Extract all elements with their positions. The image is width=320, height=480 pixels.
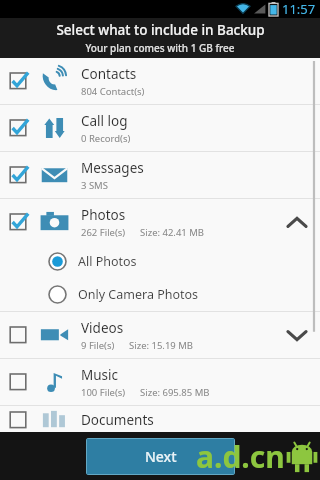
staticText: Only Camera Photos (78, 286, 199, 303)
staticText: Size: 695.85 MB (140, 386, 210, 399)
staticText: 262 File(s) (81, 226, 126, 239)
staticText: Next (145, 447, 177, 466)
staticText: 100 File(s) (81, 386, 126, 399)
staticText: Messages (81, 159, 144, 177)
button[interactable]: Call log (0, 105, 320, 151)
staticText: Music (81, 366, 119, 384)
staticText: 3 SMS (81, 179, 108, 192)
staticText: Size: 42.41 MB (140, 226, 205, 239)
button[interactable]: Videos (0, 312, 320, 358)
staticText: 804 Contact(s) (81, 85, 145, 98)
staticText: a.d.cn (196, 436, 285, 477)
staticText: Call log (81, 112, 128, 130)
button[interactable]: Photos (0, 199, 320, 245)
button[interactable]: Next (86, 438, 235, 475)
staticText: 11:57 (282, 0, 316, 18)
staticText: Videos (81, 319, 124, 337)
button[interactable]: Music (0, 359, 320, 405)
button[interactable]: Documents (0, 406, 320, 433)
button[interactable]: Collapse (280, 205, 314, 239)
button[interactable]: Expand (280, 318, 314, 352)
button[interactable]: Messages (0, 152, 320, 198)
staticText: Size: 15.19 MB (129, 339, 194, 352)
staticText: Select what to include in Backup (56, 21, 265, 39)
button[interactable]: Only Camera Photos (0, 278, 320, 311)
button[interactable]: All Photos (0, 245, 320, 278)
staticText: Contacts (81, 65, 137, 83)
button[interactable]: Contacts (0, 58, 320, 104)
staticText: Photos (81, 206, 126, 224)
staticText: 9 File(s) (81, 339, 115, 352)
staticText: Your plan comes with 1 GB free (85, 41, 235, 55)
staticText: Documents (81, 411, 154, 429)
staticText: All Photos (78, 253, 137, 270)
staticText: 0 Record(s) (81, 132, 131, 145)
